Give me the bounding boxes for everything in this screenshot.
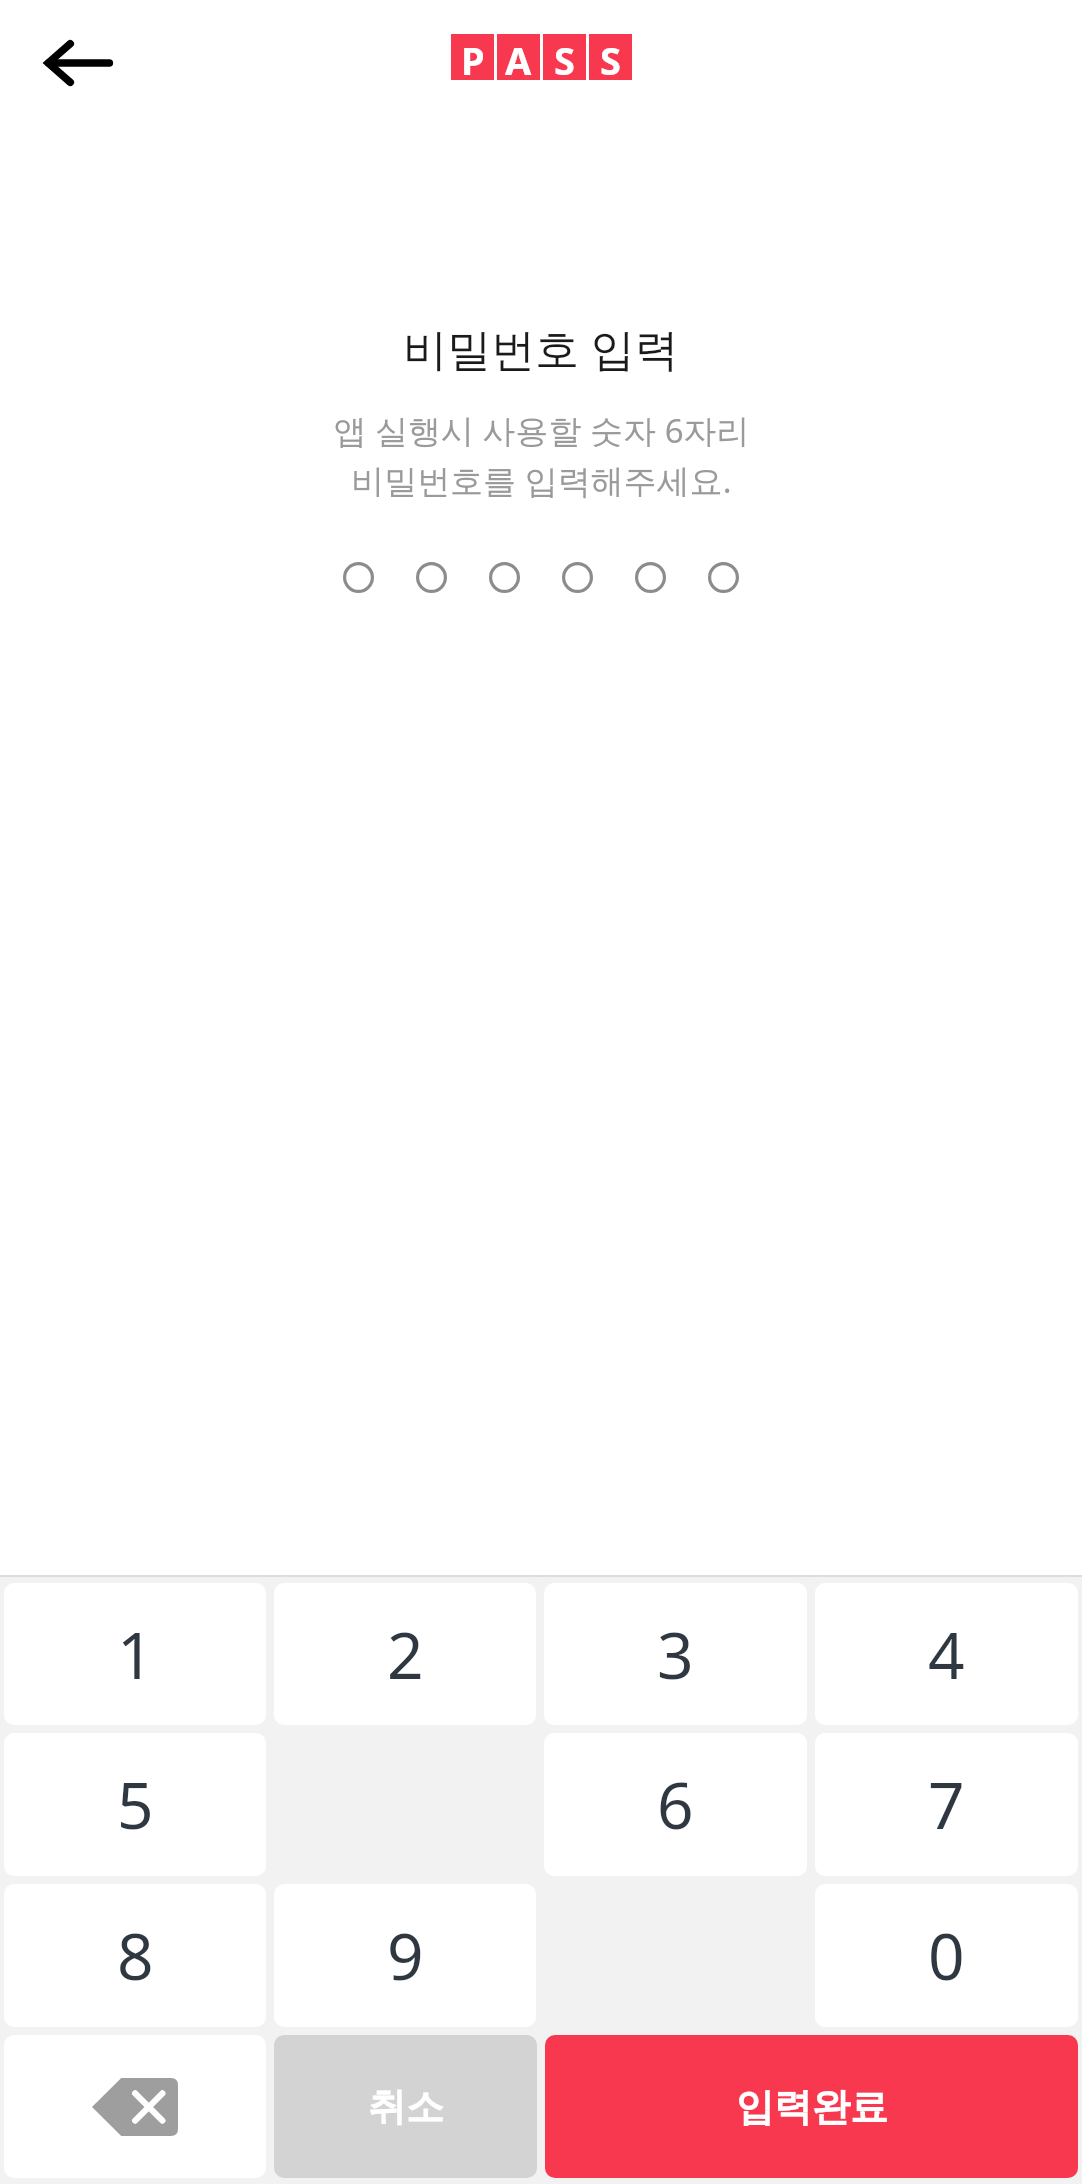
button[interactable]: 2: [274, 1583, 536, 1725]
staticText: A: [505, 34, 532, 80]
staticText: 취소: [368, 2083, 444, 2131]
button[interactable]: 9: [274, 1884, 536, 2027]
button[interactable]: Back: [18, 3, 138, 123]
button[interactable]: 1: [4, 1583, 266, 1725]
staticText: 8: [117, 1912, 154, 1999]
button[interactable]: 3: [544, 1583, 807, 1725]
button[interactable]: 6: [544, 1733, 807, 1876]
button[interactable]: 입력완료: [545, 2035, 1078, 2178]
staticText: 비밀번호 입력: [403, 318, 679, 378]
staticText: 3: [657, 1611, 694, 1698]
staticText: 6: [657, 1761, 694, 1848]
button[interactable]: 취소: [274, 2035, 537, 2178]
staticText: 4: [928, 1611, 965, 1698]
button[interactable]: 4: [815, 1583, 1078, 1725]
button[interactable]: 0: [815, 1884, 1078, 2027]
staticText: S: [554, 34, 575, 80]
staticText: 1: [117, 1611, 154, 1698]
button[interactable]: Backspace: [4, 2035, 266, 2178]
button[interactable]: 7: [815, 1733, 1078, 1876]
staticText: S: [600, 34, 621, 80]
staticText: P: [461, 34, 485, 80]
staticText: 7: [928, 1761, 965, 1848]
staticText: 2: [387, 1611, 424, 1698]
staticText: 0: [928, 1912, 965, 1999]
staticText: 입력완료: [736, 2083, 888, 2131]
staticText: 앱 실행시 사용할 숫자 6자리 비밀번호를 입력해주세요.: [333, 408, 750, 502]
staticText: 5: [117, 1761, 154, 1848]
staticText: 9: [387, 1912, 424, 1999]
button[interactable]: 5: [4, 1733, 266, 1876]
button[interactable]: 8: [4, 1884, 266, 2027]
